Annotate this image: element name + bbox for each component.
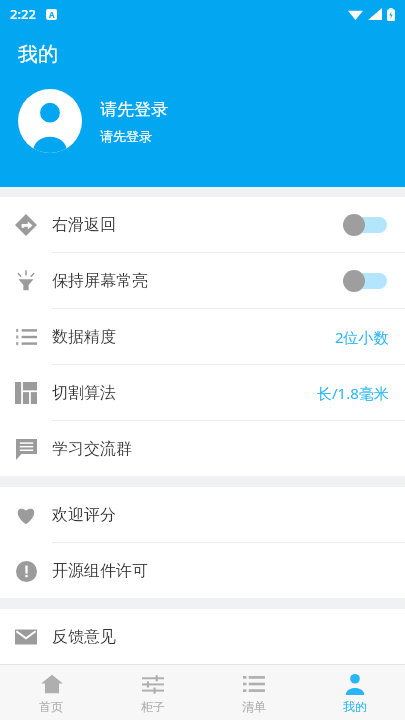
button[interactable]: 清单 — [203, 665, 304, 720]
staticText: 数据精度 — [52, 327, 116, 347]
staticText: 反馈意见 — [52, 627, 116, 647]
button[interactable]: 保持屏幕常亮 — [0, 253, 405, 308]
staticText: 切割算法 — [52, 383, 116, 403]
button[interactable]: 首页 — [0, 665, 102, 720]
button[interactable]: 右滑返回 — [0, 197, 405, 252]
staticText: 请先登录 — [100, 128, 152, 144]
staticText: 清单 — [242, 699, 266, 714]
staticText: 我的 — [343, 699, 367, 714]
other: Toggle — [343, 214, 389, 236]
staticText: 我的 — [18, 42, 58, 67]
staticText: 长/1.8毫米 — [317, 383, 389, 403]
staticText: 2:22 — [10, 5, 36, 23]
staticText: 学习交流群 — [52, 439, 132, 459]
button[interactable]: 数据精度 — [0, 309, 405, 364]
button[interactable]: 我的 — [304, 665, 405, 720]
button[interactable]: 欢迎评分 — [0, 487, 405, 542]
button[interactable]: 请先登录 — [18, 89, 405, 153]
staticText: A — [49, 9, 55, 20]
staticText: 右滑返回 — [52, 215, 116, 235]
other: Toggle — [343, 270, 389, 292]
staticText: 2位小数 — [335, 327, 389, 347]
button[interactable]: 反馈意见 — [0, 609, 405, 664]
button[interactable]: 切割算法 — [0, 365, 405, 420]
button[interactable]: 柜子 — [102, 665, 203, 720]
staticText: 保持屏幕常亮 — [52, 271, 148, 291]
staticText: 柜子 — [141, 699, 165, 714]
button[interactable]: 学习交流群 — [0, 421, 405, 476]
staticText: 欢迎评分 — [52, 505, 116, 525]
staticText: 开源组件许可 — [52, 561, 148, 581]
button[interactable]: 开源组件许可 — [0, 543, 405, 598]
staticText: 首页 — [39, 699, 63, 714]
staticText: 请先登录 — [100, 99, 168, 120]
